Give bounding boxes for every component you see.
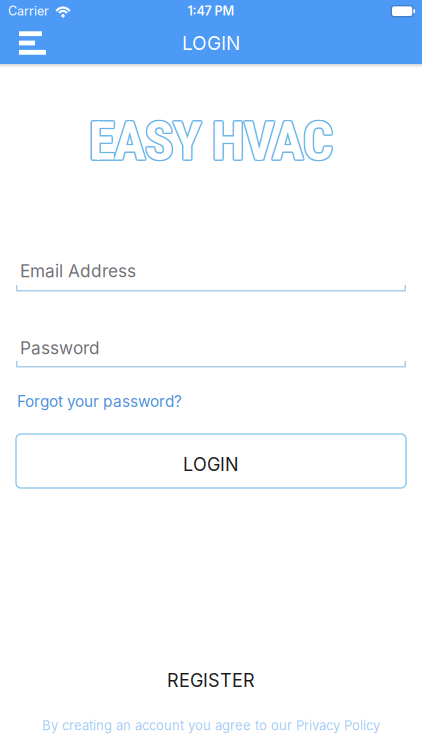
button[interactable]: REGISTER [167,667,255,689]
button[interactable]: By creating an account you agree to our … [42,716,380,734]
staticText: By creating an account you agree to our … [42,718,380,733]
staticText: Carrier [8,3,49,19]
staticText: REGISTER [167,670,255,691]
button[interactable]: LOGIN [16,434,406,488]
staticText: Email Address [20,261,136,281]
staticText: EASY HVAC [89,110,334,174]
staticText: Forgot your password? [17,392,182,411]
staticText: EASY HVAC [87,110,332,174]
staticText: EASY HVAC [88,111,333,174]
staticText: Password [20,338,100,358]
staticText: EASY HVAC [89,108,334,172]
staticText: EASY HVAC [90,109,335,173]
staticText: EASY HVAC [87,108,332,172]
staticText: LOGIN [183,454,239,475]
staticText: LOGIN [182,31,240,54]
button[interactable]: Forgot your password? [16,392,182,411]
staticText: 1:47 PM [187,3,234,19]
button[interactable] [0,31,46,55]
staticText: EASY HVAC [88,108,333,171]
staticText: EASY HVAC [87,109,332,173]
staticText: EASY HVAC [88,109,333,173]
